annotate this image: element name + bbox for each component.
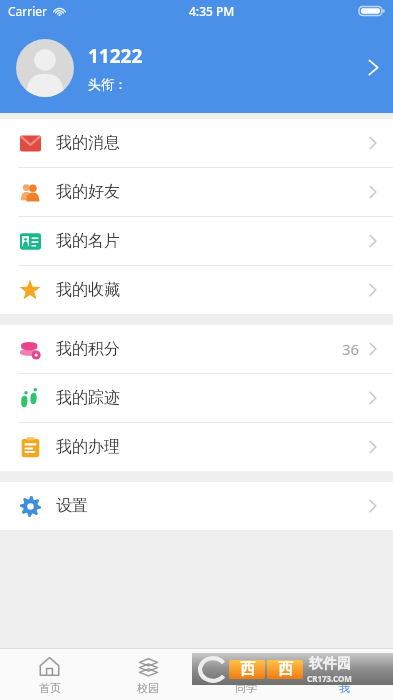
button[interactable]: 11222 [0, 22, 393, 113]
staticText: 4:35 PM [189, 3, 235, 19]
staticText: CR173.COM [307, 673, 352, 684]
staticText: 36 [342, 339, 360, 359]
staticText: 首页 [39, 681, 61, 695]
staticText: 我的积分 [56, 339, 120, 359]
staticText: 我的好友 [56, 182, 120, 202]
button[interactable]: 我的踪迹 [0, 374, 393, 422]
staticText: 软件园 [309, 655, 351, 673]
button[interactable]: 设置 [0, 482, 393, 530]
staticText: 校园 [137, 681, 159, 695]
staticText: 头衔： [88, 76, 127, 92]
staticText: 设置 [56, 496, 88, 516]
button[interactable]: 校园 [99, 650, 197, 699]
button[interactable]: 我的积分 [0, 325, 393, 373]
button[interactable]: 我 [295, 650, 393, 699]
staticText: 11222 [88, 43, 143, 69]
button[interactable]: 我的消息 [0, 119, 393, 167]
staticText: 我的消息 [56, 133, 120, 153]
button[interactable]: 我的名片 [0, 217, 393, 265]
staticText: Carrier [8, 3, 48, 19]
staticText: 我的踪迹 [56, 388, 120, 408]
staticText: 西 [278, 660, 293, 679]
staticText: 我的办理 [56, 437, 120, 457]
button[interactable]: 首页 [0, 650, 99, 699]
button[interactable]: 同学 [197, 650, 295, 699]
staticText: 我的收藏 [56, 280, 120, 300]
staticText: 同学 [235, 681, 257, 695]
staticText: 我 [339, 681, 350, 695]
staticText: 西 [240, 660, 255, 679]
staticText: 我的名片 [56, 231, 120, 251]
button[interactable]: 我的好友 [0, 168, 393, 216]
button[interactable]: 我的收藏 [0, 266, 393, 314]
button[interactable]: 我的办理 [0, 423, 393, 471]
